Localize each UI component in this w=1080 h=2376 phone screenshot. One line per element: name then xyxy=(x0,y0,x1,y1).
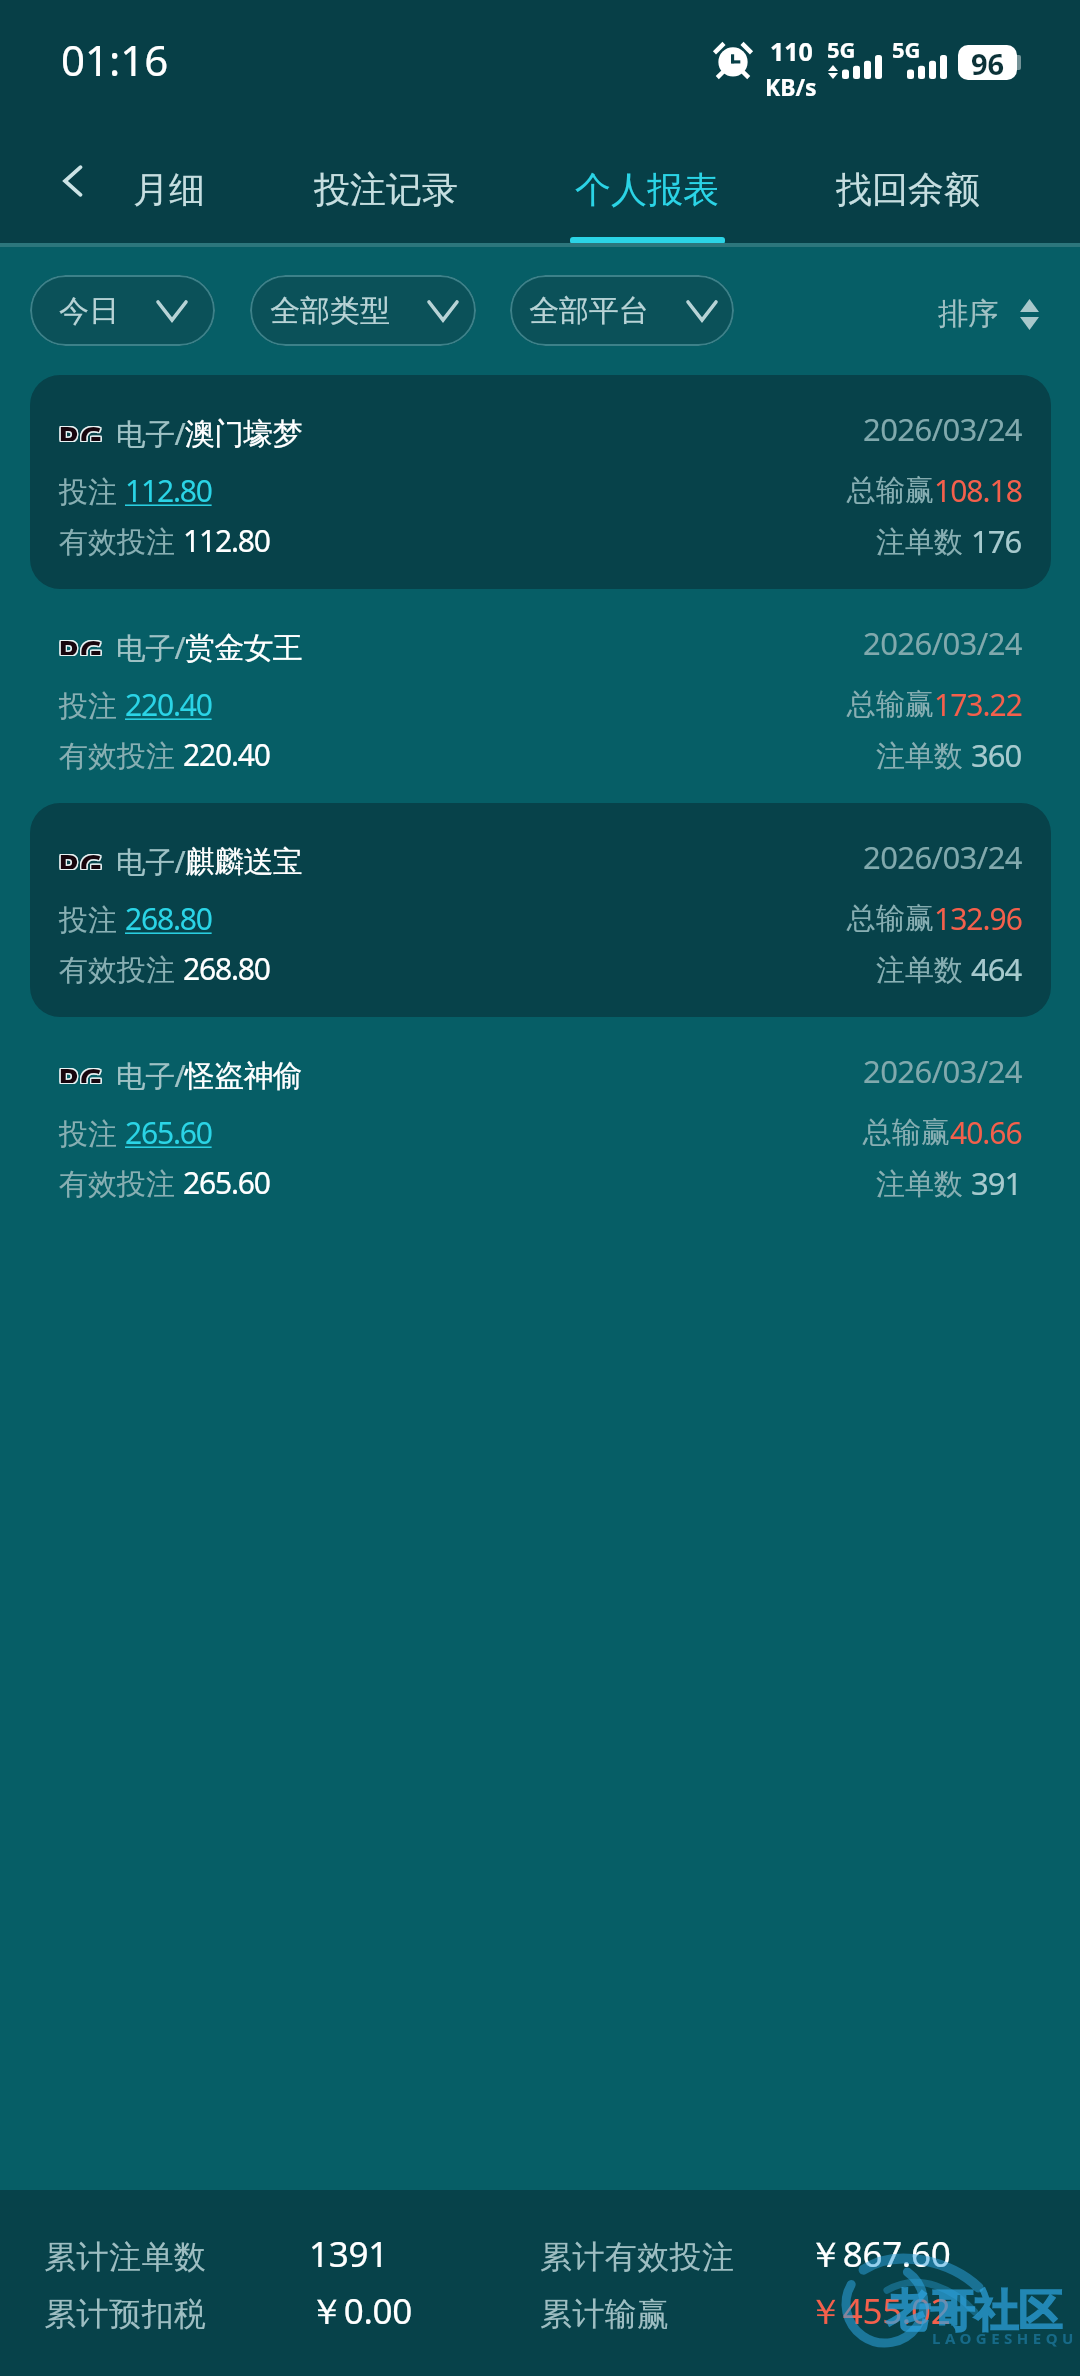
staticText: LAOGESHEQU xyxy=(932,2328,1078,2348)
staticText: PG xyxy=(58,414,104,440)
staticText: 月细 xyxy=(133,167,205,212)
staticText: 总输赢 xyxy=(847,900,934,937)
staticText: PG xyxy=(59,629,105,655)
staticText: 132.96 xyxy=(934,898,1022,939)
staticText: 173.22 xyxy=(934,684,1022,725)
staticText: PG xyxy=(58,628,104,654)
staticText: 265.60 xyxy=(183,1162,270,1203)
staticText: 268.80 xyxy=(125,898,212,939)
staticText: 5G xyxy=(892,34,921,64)
staticText: 注单数 xyxy=(876,949,971,989)
staticText: 总输赢 xyxy=(847,686,934,723)
staticText: ￥0.00 xyxy=(309,2287,412,2335)
staticText: PG xyxy=(58,1056,104,1082)
staticText: 电子/ xyxy=(116,841,185,882)
staticText: PG xyxy=(57,843,103,869)
staticText: 总输赢 xyxy=(863,1114,950,1151)
staticText: 有效投注 xyxy=(59,735,183,775)
staticText: PG xyxy=(59,630,105,656)
staticText: 268.80 xyxy=(183,948,270,989)
staticText: 112.80 xyxy=(125,470,212,511)
staticText: PG xyxy=(59,1056,105,1082)
staticText: 电子/ xyxy=(116,1055,185,1096)
button[interactable]: PG xyxy=(30,1017,1051,1231)
staticText: 电子/ xyxy=(116,413,185,454)
staticText: 2026/03/24 xyxy=(863,622,1022,664)
staticText: 220.40 xyxy=(125,684,212,725)
staticText: PG xyxy=(59,628,105,654)
staticText: PG xyxy=(58,844,104,870)
staticText: PG xyxy=(58,415,104,441)
staticText: 176 xyxy=(971,520,1022,562)
staticText: 01:16 xyxy=(61,31,169,88)
staticText: 找回余额 xyxy=(836,167,980,212)
staticText: 投注 xyxy=(59,1113,125,1153)
staticText: PG xyxy=(58,416,104,442)
staticText: 麒麟送宝 xyxy=(185,843,302,881)
staticText: PG xyxy=(57,1056,103,1082)
staticText: 1391 xyxy=(309,2230,388,2278)
staticText: 赏金女王 xyxy=(185,629,302,667)
staticText: PG xyxy=(59,416,105,442)
staticText: PG xyxy=(59,1058,105,1084)
staticText: PG xyxy=(59,1057,105,1083)
staticText: 108.18 xyxy=(934,470,1022,511)
staticText: 今日 xyxy=(59,292,119,330)
staticText: PG xyxy=(59,415,105,441)
staticText: PG xyxy=(58,842,104,868)
staticText: 总输赢 xyxy=(847,472,934,509)
button[interactable]: PG xyxy=(30,375,1051,589)
staticText: 391 xyxy=(971,1162,1022,1204)
staticText: 5G xyxy=(827,34,856,64)
staticText: 220.40 xyxy=(183,734,270,775)
staticText: 澳门壕梦 xyxy=(185,415,302,453)
staticText: PG xyxy=(59,842,105,868)
staticText: 电子/ xyxy=(116,627,185,668)
button[interactable]: 全部类型 xyxy=(250,275,476,346)
staticText: KB/s xyxy=(765,71,817,102)
staticText: 112.80 xyxy=(183,520,270,561)
staticText: PG xyxy=(57,1057,103,1083)
staticText: 360 xyxy=(971,734,1022,776)
staticText: 有效投注 xyxy=(59,1163,183,1203)
staticText: PG xyxy=(57,629,103,655)
staticText: PG xyxy=(59,414,105,440)
staticText: PG xyxy=(59,844,105,870)
button[interactable]: 月细 xyxy=(19,132,319,240)
staticText: 投注 xyxy=(59,471,125,511)
staticText: PG xyxy=(58,1057,104,1083)
staticText: 累计输赢 xyxy=(540,2294,670,2334)
staticText: 个人报表 xyxy=(575,167,719,212)
button[interactable]: Back xyxy=(44,152,102,210)
staticText: PG xyxy=(57,415,103,441)
staticText: 96 xyxy=(971,45,1005,79)
staticText: 2026/03/24 xyxy=(863,1050,1022,1092)
button[interactable]: 投注记录 xyxy=(236,132,536,240)
staticText: 464 xyxy=(971,948,1022,990)
button[interactable]: PG xyxy=(30,803,1051,1017)
button[interactable]: 排序 xyxy=(938,286,1039,342)
staticText: 累计有效投注 xyxy=(540,2237,735,2277)
staticText: 投注 xyxy=(59,899,125,939)
staticText: PG xyxy=(57,628,103,654)
button[interactable]: 个人报表 xyxy=(497,132,797,240)
staticText: 2026/03/24 xyxy=(863,836,1022,878)
staticText: 投注 xyxy=(59,685,125,725)
staticText: ￥867.60 xyxy=(808,2230,951,2278)
button[interactable]: PG xyxy=(30,589,1051,803)
staticText: 全部平台 xyxy=(529,292,649,330)
staticText: 注单数 xyxy=(876,735,971,775)
button[interactable]: 找回余额 xyxy=(758,132,1058,240)
staticText: PG xyxy=(59,843,105,869)
staticText: 累计预扣税 xyxy=(44,2294,206,2334)
staticText: PG xyxy=(57,416,103,442)
button[interactable]: 今日 xyxy=(30,275,215,346)
staticText: 注单数 xyxy=(876,521,971,561)
staticText: PG xyxy=(57,630,103,656)
staticText: 排序 xyxy=(938,295,998,333)
staticText: 怪盗神偷 xyxy=(185,1057,302,1095)
staticText: PG xyxy=(57,844,103,870)
staticText: PG xyxy=(57,414,103,440)
staticText: PG xyxy=(58,1058,104,1084)
button[interactable]: 全部平台 xyxy=(510,275,734,346)
